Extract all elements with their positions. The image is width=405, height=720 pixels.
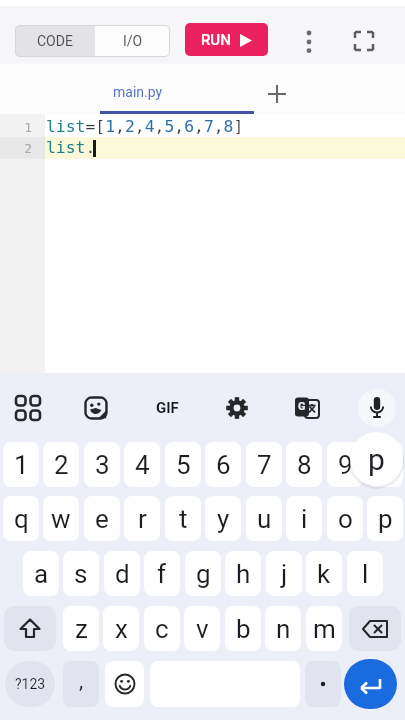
button[interactable] [344,659,397,709]
button[interactable] [358,389,396,427]
button[interactable] [294,26,324,58]
staticText: e [95,504,109,534]
button[interactable]: main.py [100,72,254,111]
staticText: z [75,614,88,644]
staticText: j [281,559,288,589]
button[interactable]: q [3,496,39,541]
button[interactable]: c [144,606,180,651]
button[interactable]: ?123 [5,661,55,707]
staticText: q [14,504,29,534]
button[interactable]: e [84,496,120,541]
button[interactable] [225,396,249,420]
staticText: a [34,559,49,589]
staticText: 4 [135,450,150,480]
staticText: 0 [378,450,393,480]
button[interactable]: l [347,551,383,596]
button[interactable]: i [286,496,322,541]
staticText: m [313,614,336,644]
staticText: h [236,559,251,589]
button[interactable]: h [225,551,261,596]
button[interactable]: 8 [286,442,322,487]
staticText: f [157,559,167,589]
staticText: i [301,504,308,534]
button[interactable]: y [205,496,241,541]
staticText: RUN [201,31,231,49]
staticText: g [196,559,211,589]
button[interactable]: x [103,606,139,651]
button[interactable]: k [306,551,342,596]
button[interactable]: 2 [43,442,79,487]
button[interactable]: 6 [205,442,241,487]
button[interactable]: b [225,606,261,651]
staticText: l [362,559,369,589]
button[interactable]: CODE [15,25,95,57]
button[interactable]: o [327,496,363,541]
staticText: ?123 [15,676,46,692]
button[interactable]: u [246,496,282,541]
staticText: x [115,614,128,644]
staticText: G [298,400,306,413]
button[interactable]: 9 [327,442,363,487]
staticText: k [317,559,331,589]
button[interactable] [4,606,56,651]
button[interactable]: p [367,496,403,541]
staticText: GIF [156,399,179,417]
staticText: s [74,559,88,589]
staticText: list=[1,2,4,5,6,7,8] [46,117,244,136]
staticText: I/O [123,33,143,49]
staticText: o [338,504,353,534]
button[interactable]: GIF [150,396,184,420]
button[interactable]: m [306,606,342,651]
button[interactable] [349,606,401,651]
staticText: t [179,504,188,534]
staticText: 3 [95,450,110,480]
button[interactable]: s [63,551,99,596]
staticText: v [196,614,209,644]
staticText: y [217,504,230,534]
button[interactable]: w [43,496,79,541]
staticText: p [378,504,393,534]
button[interactable]: RUN [185,23,268,56]
button[interactable]: f [144,551,180,596]
button[interactable]: r [124,496,160,541]
staticText: 2 [54,450,69,480]
button[interactable]: v [184,606,220,651]
staticText: r [138,504,147,534]
button[interactable]: z [63,606,99,651]
button[interactable]: j [266,551,302,596]
staticText: c [155,614,169,644]
button[interactable]: 0 [367,442,403,487]
staticText: 9 [338,450,353,480]
button[interactable]: a [23,551,59,596]
button[interactable]: n [265,606,301,651]
staticText: d [115,559,130,589]
staticText: 5 [176,450,191,480]
button[interactable]: 4 [124,442,160,487]
button[interactable]: , [63,661,99,707]
staticText: , [79,669,84,694]
staticText: CODE [37,33,73,49]
button[interactable]: t [165,496,201,541]
button[interactable]: I/O [95,25,170,57]
button[interactable]: 5 [165,442,201,487]
button[interactable] [84,396,108,420]
staticText: main.py [113,84,163,100]
button[interactable]: g [185,551,221,596]
staticText: u [257,504,272,534]
button[interactable]: 3 [84,442,120,487]
button[interactable]: d [104,551,140,596]
staticText: 1 [24,120,32,135]
button[interactable]: 1 [3,442,39,487]
staticText: b [236,614,251,644]
staticText: w [51,504,71,534]
button[interactable] [352,29,376,53]
button[interactable] [105,661,144,707]
staticText: 7 [257,450,272,480]
staticText: 1 [14,450,29,480]
button[interactable] [263,80,291,108]
button[interactable] [305,661,341,707]
button[interactable]: G [294,396,320,420]
button[interactable] [14,394,42,422]
button[interactable]: 7 [246,442,282,487]
